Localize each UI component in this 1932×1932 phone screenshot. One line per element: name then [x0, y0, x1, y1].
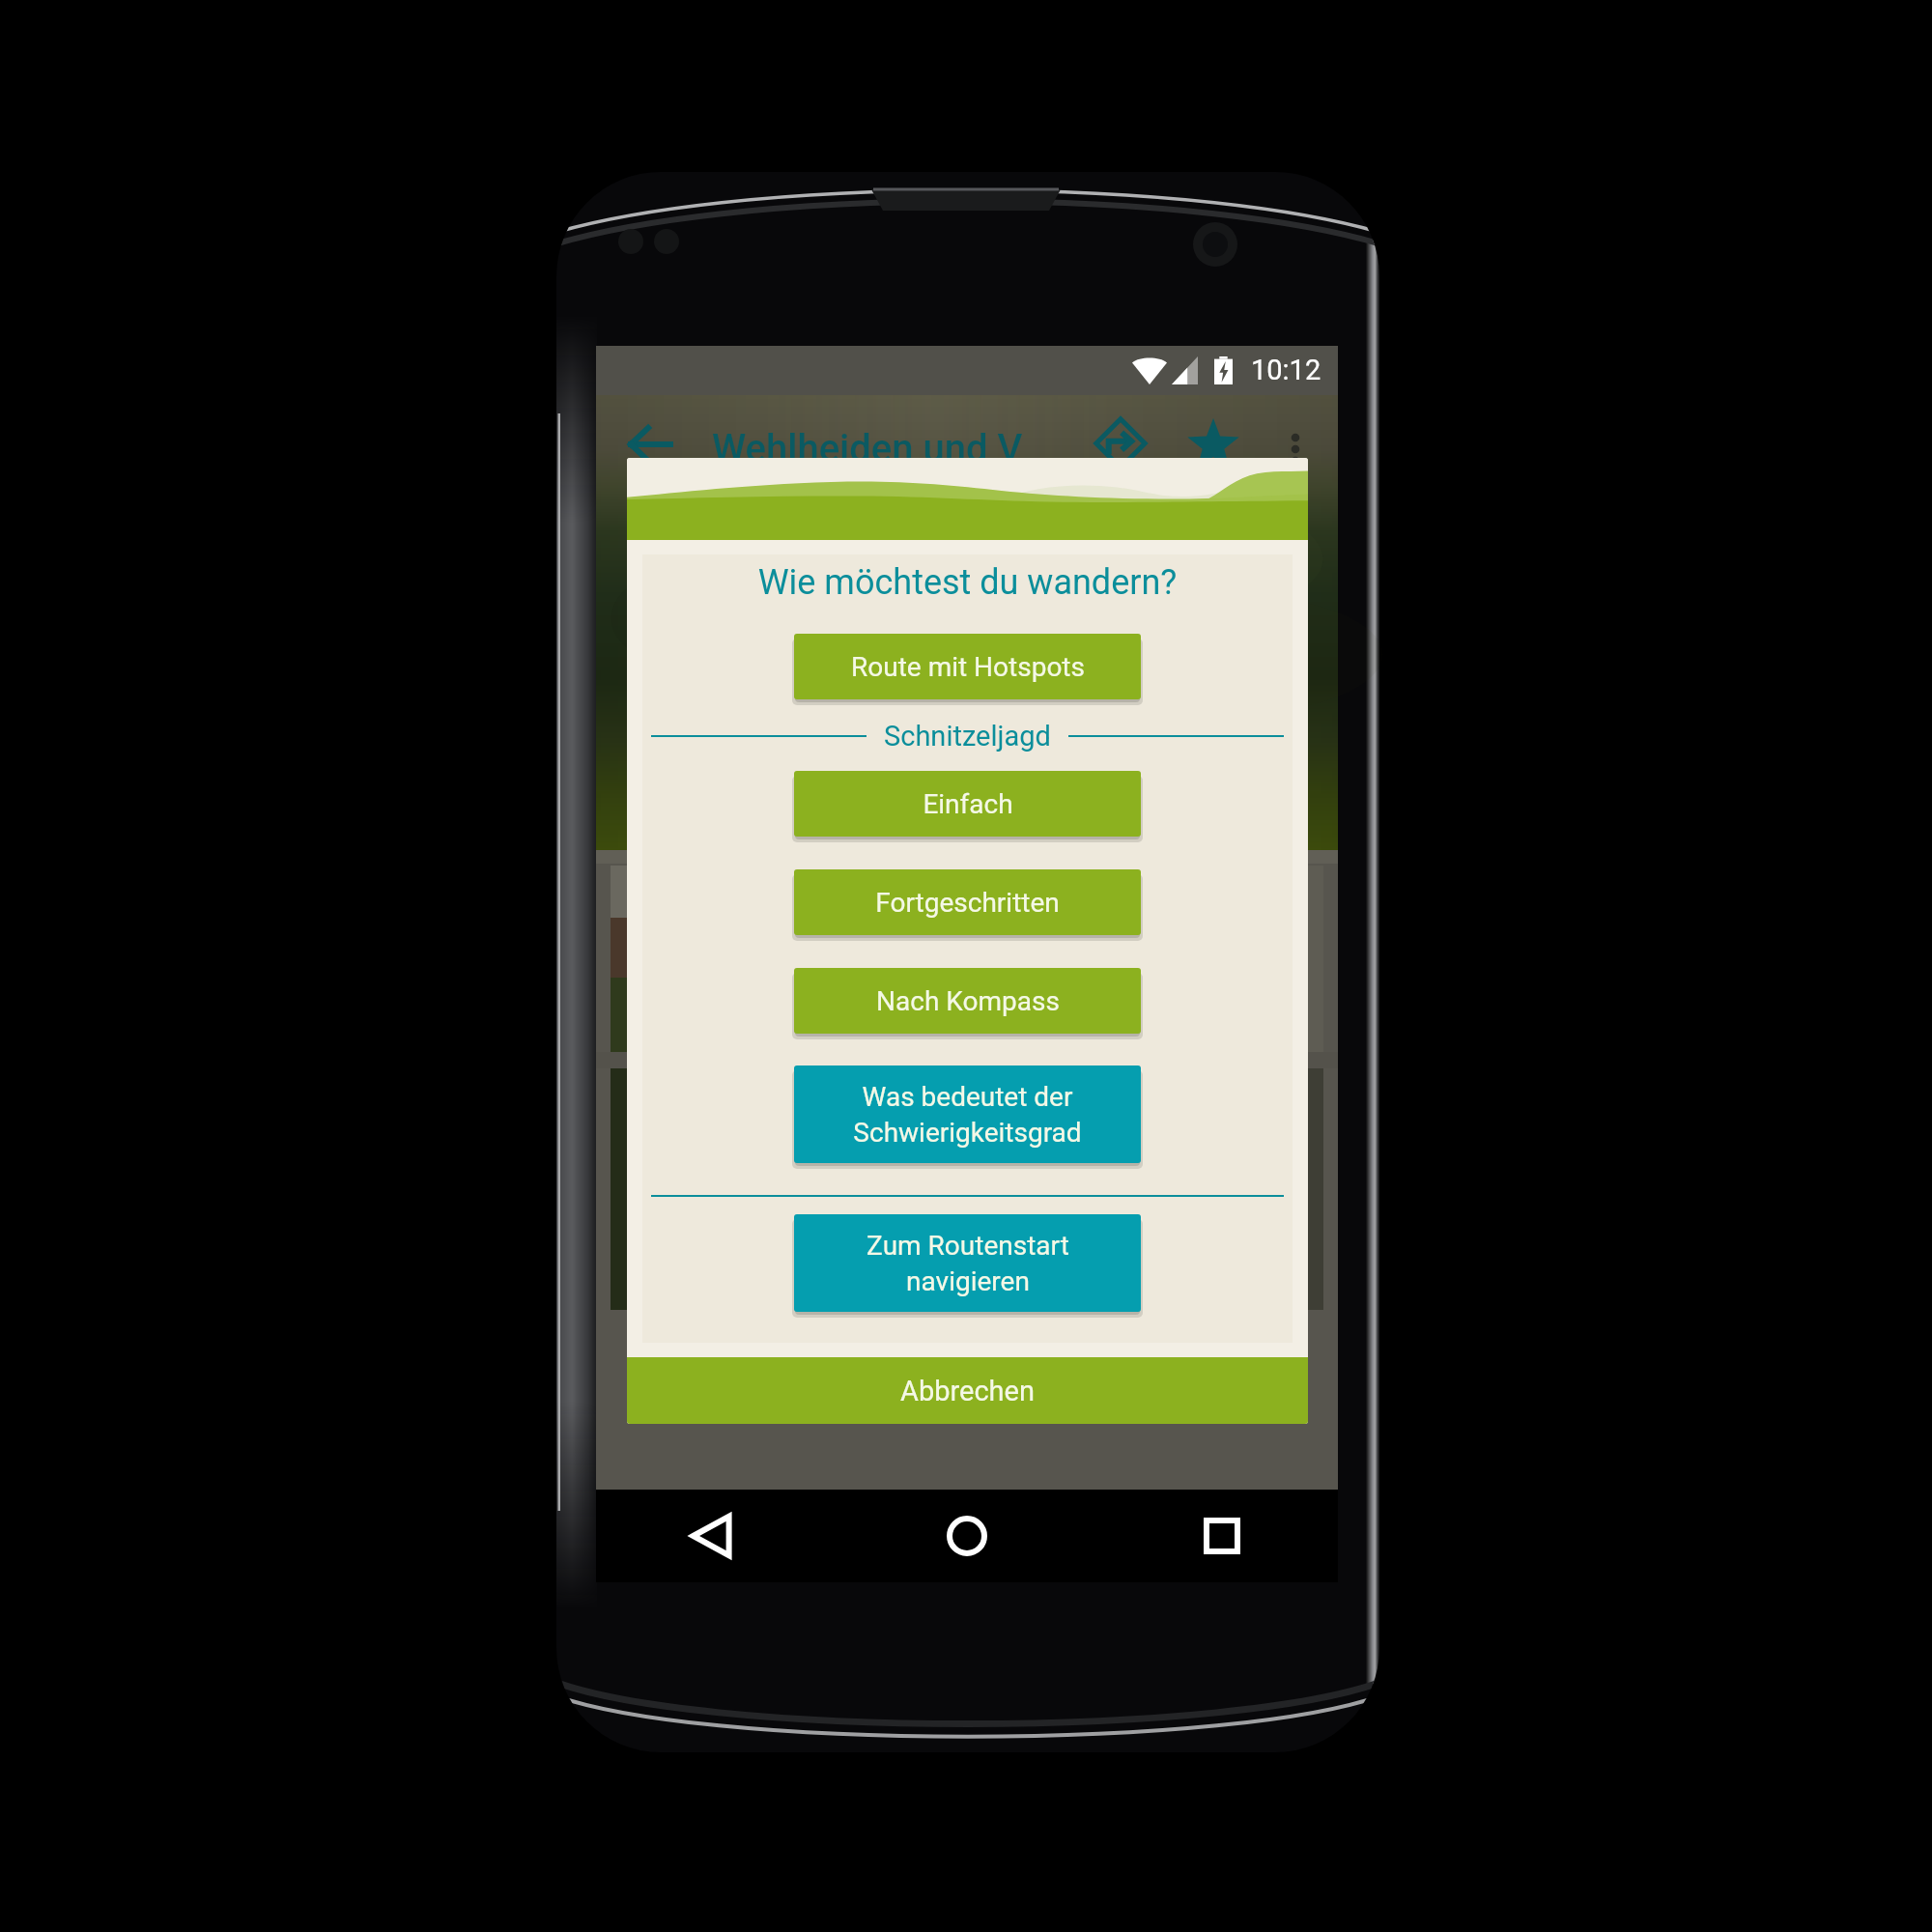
staticText: Route mit Hotspots — [851, 651, 1085, 683]
button[interactable]: Favorite — [1187, 417, 1239, 469]
button[interactable]: Back — [615, 1490, 809, 1582]
staticText: Abbrechen — [900, 1375, 1035, 1407]
button[interactable]: Home — [870, 1490, 1064, 1582]
button[interactable]: Recent apps — [1125, 1490, 1319, 1582]
staticText: Schnitzeljagd — [884, 720, 1051, 753]
button[interactable]: Route mit Hotspots — [794, 634, 1141, 699]
staticText: 10:12 — [1251, 354, 1321, 386]
button[interactable]: Einfach — [794, 771, 1141, 837]
staticText: Zum Routenstart navigieren — [867, 1230, 1069, 1297]
button[interactable]: Fortgeschritten — [794, 869, 1141, 935]
staticText: Nach Kompass — [876, 985, 1060, 1017]
button[interactable]: Abbrechen — [627, 1357, 1308, 1424]
staticText: Wie möchtest du wandern? — [642, 562, 1293, 603]
button[interactable]: Zum Routenstart navigieren — [794, 1214, 1141, 1312]
button[interactable]: Nach Kompass — [794, 968, 1141, 1034]
button[interactable]: Back — [626, 420, 674, 469]
staticText: Was bedeutet der Schwierigkeitsgrad — [853, 1081, 1082, 1149]
button[interactable]: Was bedeutet der Schwierigkeitsgrad — [794, 1065, 1141, 1163]
staticText: Einfach — [923, 788, 1013, 820]
staticText: Wehlheiden und V — [712, 426, 1023, 471]
button[interactable]: Directions — [1094, 416, 1148, 470]
button[interactable]: More options — [1284, 423, 1307, 475]
staticText: Fortgeschritten — [875, 887, 1060, 919]
